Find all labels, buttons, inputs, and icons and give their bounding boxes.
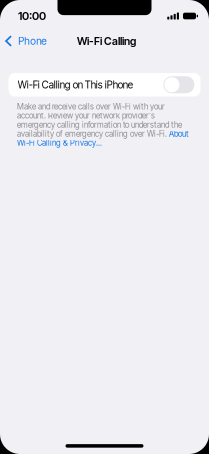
- button[interactable]: Phone: [0, 31, 51, 51]
- staticText: Wi-Fi Calling: [77, 34, 136, 47]
- staticText: About: [169, 129, 189, 139]
- staticText: 10:00: [18, 9, 46, 23]
- staticText: availability of emergency calling over W…: [17, 129, 169, 139]
- staticText: Make and receive calls over Wi-Fi with y…: [17, 102, 165, 111]
- staticText: Wi-Fi Calling & Privacy...: [17, 138, 102, 148]
- staticText: Phone: [18, 35, 46, 47]
- staticText: emergency calling information to underst…: [17, 120, 182, 130]
- button[interactable]: availability of emergency calling over W…: [17, 129, 189, 147]
- staticText: account. Review your network provider's: [17, 111, 155, 120]
- staticText: Wi-Fi Calling on This iPhone: [18, 79, 133, 91]
- button[interactable]: Wi-Fi Calling on This iPhone: [0, 73, 209, 96]
